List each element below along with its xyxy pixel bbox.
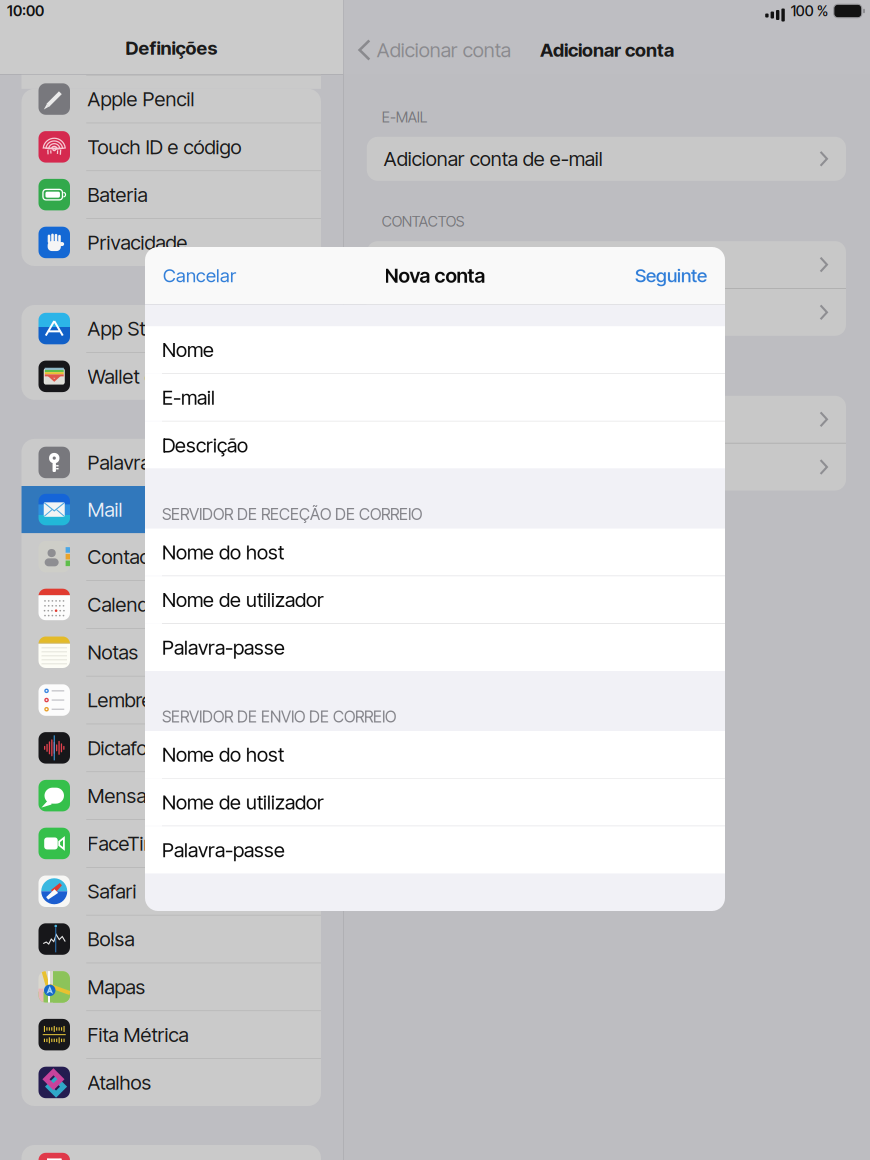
staticText: Bolsa — [87, 927, 134, 951]
button[interactable] — [367, 396, 846, 443]
staticText: Mail — [87, 498, 122, 521]
button[interactable] — [367, 241, 846, 288]
button[interactable]: Safari — [21, 868, 321, 915]
button[interactable]: Nome do host — [145, 529, 725, 576]
staticText: Atalhos — [87, 1071, 151, 1094]
staticText: FaceTime — [87, 832, 170, 855]
staticText: Palavra-passe — [162, 838, 285, 862]
staticText: Adicionar conta — [377, 38, 511, 62]
button[interactable] — [367, 443, 846, 490]
staticText: Definições — [125, 37, 217, 59]
staticText: Nome de utilizador — [162, 790, 324, 814]
staticText: Fita Métrica — [87, 1023, 188, 1046]
staticText: Touch ID e código — [87, 135, 241, 159]
button[interactable]: Mail — [21, 486, 321, 533]
button[interactable]: Adicionar conta de e-mail — [367, 137, 846, 181]
button[interactable]: FaceTime — [21, 820, 321, 867]
staticText: Nome de utilizador — [162, 588, 324, 612]
staticText: Contactos — [87, 545, 176, 568]
staticText: SERVIDOR DE ENVIO DE CORREIO — [162, 707, 396, 726]
button[interactable]: Dictafone — [21, 724, 321, 771]
staticText: 100 % — [791, 2, 829, 20]
button[interactable]: Atalhos — [21, 1059, 321, 1106]
staticText: 10:00 — [7, 2, 44, 20]
button[interactable]: Música — [21, 1145, 321, 1160]
button[interactable]: Palavra-passe — [145, 826, 725, 873]
button[interactable]: Palavras-passe — [21, 439, 321, 486]
staticText: Palavra-passe — [162, 636, 285, 659]
button[interactable]: Lembretes — [21, 676, 321, 724]
button[interactable]: Seguinte — [617, 247, 725, 304]
button[interactable]: Mapas — [21, 963, 321, 1010]
button[interactable]: Calendário — [21, 581, 321, 628]
button[interactable]: Contactos — [21, 533, 321, 580]
button[interactable]: Descrição — [145, 422, 725, 469]
button[interactable]: Apple Pencil — [21, 75, 321, 123]
staticText: CONTACTOS — [382, 213, 465, 230]
button[interactable]: Nome do host — [145, 731, 725, 778]
staticText: Nova conta — [384, 264, 485, 287]
staticText: Adicionar conta — [540, 39, 674, 61]
staticText: E-mail — [162, 386, 215, 409]
staticText: Cancelar — [163, 264, 236, 286]
button[interactable]: Mensagens — [21, 772, 321, 819]
staticText: SERVIDOR DE RECEÇÃO DE CORREIO — [162, 505, 422, 524]
button[interactable]: Nome — [145, 326, 725, 373]
button[interactable]: Nome de utilizador — [145, 779, 725, 826]
staticText: Apple Pencil — [87, 87, 194, 111]
staticText: Mapas — [87, 975, 145, 999]
button[interactable]: App Store — [21, 305, 321, 352]
button[interactable]: Palavra-passe — [145, 624, 725, 671]
staticText: Lembretes — [87, 688, 179, 712]
button[interactable]: Bolsa — [21, 915, 321, 963]
staticText: Nome do host — [162, 540, 284, 564]
button[interactable]: Cancelar — [145, 247, 254, 304]
staticText: Bateria — [87, 183, 147, 206]
staticText: Seguinte — [635, 264, 707, 286]
staticText: Privacidade — [87, 231, 187, 254]
staticText: App Store — [87, 317, 173, 340]
staticText: Dictafone — [87, 736, 169, 760]
staticText: Nome — [162, 338, 214, 361]
staticText: Wallet e Apple Pay — [87, 365, 247, 388]
button[interactable]: Nome de utilizador — [145, 576, 725, 623]
staticText: Notas — [87, 640, 138, 664]
button[interactable]: Fita Métrica — [21, 1011, 321, 1058]
staticText: Nome do host — [162, 743, 284, 766]
button[interactable] — [367, 289, 846, 336]
button[interactable]: Touch ID e código — [21, 123, 321, 170]
button[interactable]: Adicionar conta — [344, 12, 511, 62]
staticText: Mensagens — [87, 784, 189, 807]
button[interactable]: Notas — [21, 629, 321, 676]
staticText: Calendário — [87, 593, 180, 616]
staticText: Palavras-passe — [87, 451, 220, 474]
button[interactable]: Wallet e Apple Pay — [21, 353, 321, 400]
staticText: E-MAIL — [382, 108, 428, 126]
button[interactable]: E-mail — [145, 374, 725, 421]
button[interactable]: Privacidade — [21, 219, 321, 266]
button[interactable]: Bateria — [21, 171, 321, 218]
staticText: Safari — [87, 879, 136, 903]
staticText: Descrição — [162, 433, 248, 457]
staticText: Adicionar conta de e-mail — [384, 147, 603, 171]
